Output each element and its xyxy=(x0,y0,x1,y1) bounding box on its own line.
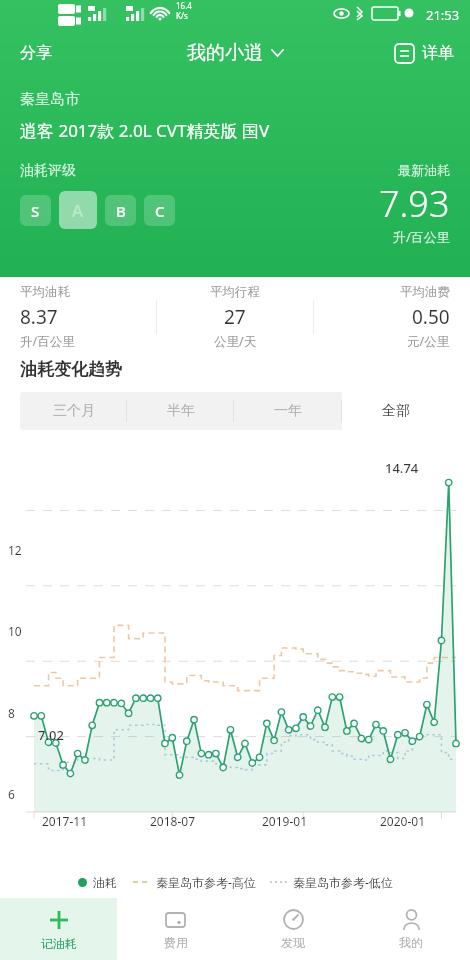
staticText: 详单 xyxy=(422,43,454,63)
staticText: 秦皇岛市参考-高位 xyxy=(156,874,256,890)
staticText: 油耗变化趋势 xyxy=(20,359,122,380)
staticText: 2020-01 xyxy=(380,813,426,829)
staticText: 7.02 xyxy=(38,726,64,744)
button[interactable]: 我的 xyxy=(352,898,470,960)
button[interactable]: 详单 xyxy=(385,37,470,69)
staticText: 升/百公里 xyxy=(393,228,450,246)
staticText: A xyxy=(72,199,84,222)
staticText: 一年 xyxy=(274,402,302,420)
staticText: 秦皇岛市 xyxy=(20,90,80,109)
button[interactable]: 发现 xyxy=(234,898,352,960)
button[interactable]: 全部 xyxy=(342,392,450,430)
staticText: 油耗评级 xyxy=(20,162,76,180)
other: 详单 xyxy=(395,44,414,63)
button[interactable]: 平均行程 xyxy=(157,284,313,350)
button[interactable]: 一年 xyxy=(234,392,342,430)
button[interactable]: 费用 xyxy=(117,898,234,960)
staticText: 2018-07 xyxy=(150,813,196,829)
button[interactable]: S xyxy=(20,195,51,226)
staticText: 平均油耗 xyxy=(20,284,70,300)
staticText: 我的 xyxy=(399,935,423,950)
staticText: B xyxy=(116,201,126,221)
staticText: 油耗 xyxy=(93,875,117,890)
button[interactable]: C xyxy=(144,195,175,226)
staticText: 14.74 xyxy=(385,459,419,477)
staticText: 平均行程 xyxy=(210,284,260,300)
staticText: 三个月 xyxy=(53,402,95,420)
staticText: 全部 xyxy=(382,402,410,420)
staticText: 0.50 xyxy=(412,304,450,330)
button[interactable]: 平均油费 xyxy=(314,284,470,350)
staticText: 发现 xyxy=(281,935,305,950)
staticText: 秦皇岛市参考-低位 xyxy=(293,874,393,890)
staticText: 6 xyxy=(8,786,15,802)
staticText: 分享 xyxy=(20,43,52,63)
staticText: 8.37 xyxy=(20,304,58,330)
button[interactable]: 记油耗 xyxy=(0,898,117,960)
button[interactable]: 平均油耗 xyxy=(0,284,156,350)
staticText: 27 xyxy=(224,304,246,330)
staticText: 8 xyxy=(8,705,15,721)
button[interactable]: A xyxy=(59,191,97,229)
staticText: 平均油费 xyxy=(400,284,450,300)
button[interactable]: 三个月 xyxy=(20,392,127,430)
button[interactable]: 我的小逍 xyxy=(181,35,290,71)
staticText: 公里/天 xyxy=(214,333,257,350)
staticText: 升/百公里 xyxy=(20,333,75,350)
button[interactable]: 半年 xyxy=(127,392,234,430)
staticText: 2019-01 xyxy=(262,813,308,829)
staticText: 12 xyxy=(8,542,22,558)
staticText: 我的小逍 xyxy=(187,41,263,65)
staticText: 21:53 xyxy=(426,6,460,24)
staticText: 半年 xyxy=(167,402,195,420)
staticText: 2017-11 xyxy=(42,813,88,829)
staticText: C xyxy=(155,201,165,221)
button[interactable]: 分享 xyxy=(0,34,72,72)
staticText: S xyxy=(31,201,40,221)
staticText: 费用 xyxy=(164,935,188,950)
staticText: 7.93 xyxy=(379,179,450,228)
staticText: 最新油耗 xyxy=(398,162,450,178)
staticText: 逍客 2017款 2.0L CVT精英版 国V xyxy=(20,119,270,142)
staticText: 16.4 K/s xyxy=(176,0,192,21)
staticText: 10 xyxy=(8,623,22,639)
staticText: 元/公里 xyxy=(407,333,450,350)
button[interactable]: B xyxy=(105,195,136,226)
staticText: 记油耗 xyxy=(41,936,77,951)
